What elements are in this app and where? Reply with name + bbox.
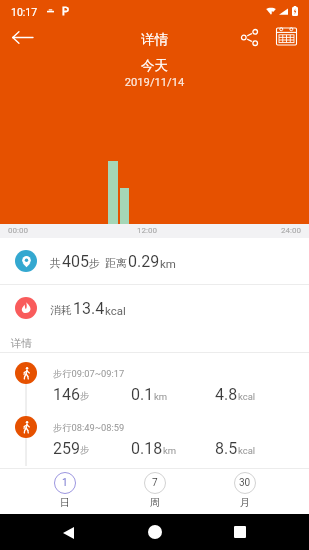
staticText: 步 [80,390,90,402]
staticText: 24:00 [281,226,301,235]
staticText: 4.8 [215,385,238,404]
staticText: 7 [152,477,158,489]
staticText: 消耗 [50,303,72,317]
button[interactable]: 7 [110,469,200,514]
staticText: 详情 [11,337,32,350]
button[interactable]: Home [142,519,168,545]
button[interactable]: 步行08:49~08:59 [0,416,309,462]
button[interactable]: Calendar [271,20,301,50]
staticText: 10:17 [11,6,38,18]
staticText: 13.4 [73,299,105,318]
staticText: kcal [238,391,256,402]
staticText: kcal [238,445,256,456]
staticText: 日 [60,496,70,509]
button[interactable]: Recents [227,519,253,545]
button[interactable]: 步行09:07~09:17 [0,362,309,408]
staticText: 步 [89,256,100,270]
staticText: 月 [240,496,250,509]
staticText: 步 [80,444,90,456]
staticText: P [62,5,69,18]
staticText: 0.1 [131,385,154,404]
button[interactable]: Back [7,22,37,52]
staticText: 2019/11/14 [0,76,309,89]
button[interactable]: 1 [19,469,110,514]
button[interactable]: 消耗 [0,285,309,331]
staticText: 12:00 [137,226,157,235]
staticText: 0.18 [131,439,163,458]
staticText: 步行09:07~09:17 [53,368,125,380]
staticText: kcal [105,304,126,317]
staticText: 详情 [141,31,168,48]
staticText: km [163,445,177,456]
staticText: 405 [62,252,89,271]
staticText: km [160,257,176,270]
staticText: 30 [239,477,251,489]
button[interactable]: Share [234,22,264,52]
staticText: km [154,391,168,402]
staticText: 146 [53,385,80,404]
staticText: 步行08:49~08:59 [53,422,125,434]
staticText: 0.29 [128,252,160,271]
button[interactable]: 30 [200,469,290,514]
staticText: 周 [150,496,160,509]
staticText: 共 [50,256,61,270]
staticText: 8.5 [215,439,238,458]
button[interactable]: 共 [0,238,309,284]
staticText: 259 [53,439,80,458]
staticText: 今天 [0,57,309,74]
staticText: 00:00 [8,226,28,235]
button[interactable]: Back [55,519,82,546]
staticText: 距离 [105,256,127,270]
staticText: 1 [62,477,68,489]
